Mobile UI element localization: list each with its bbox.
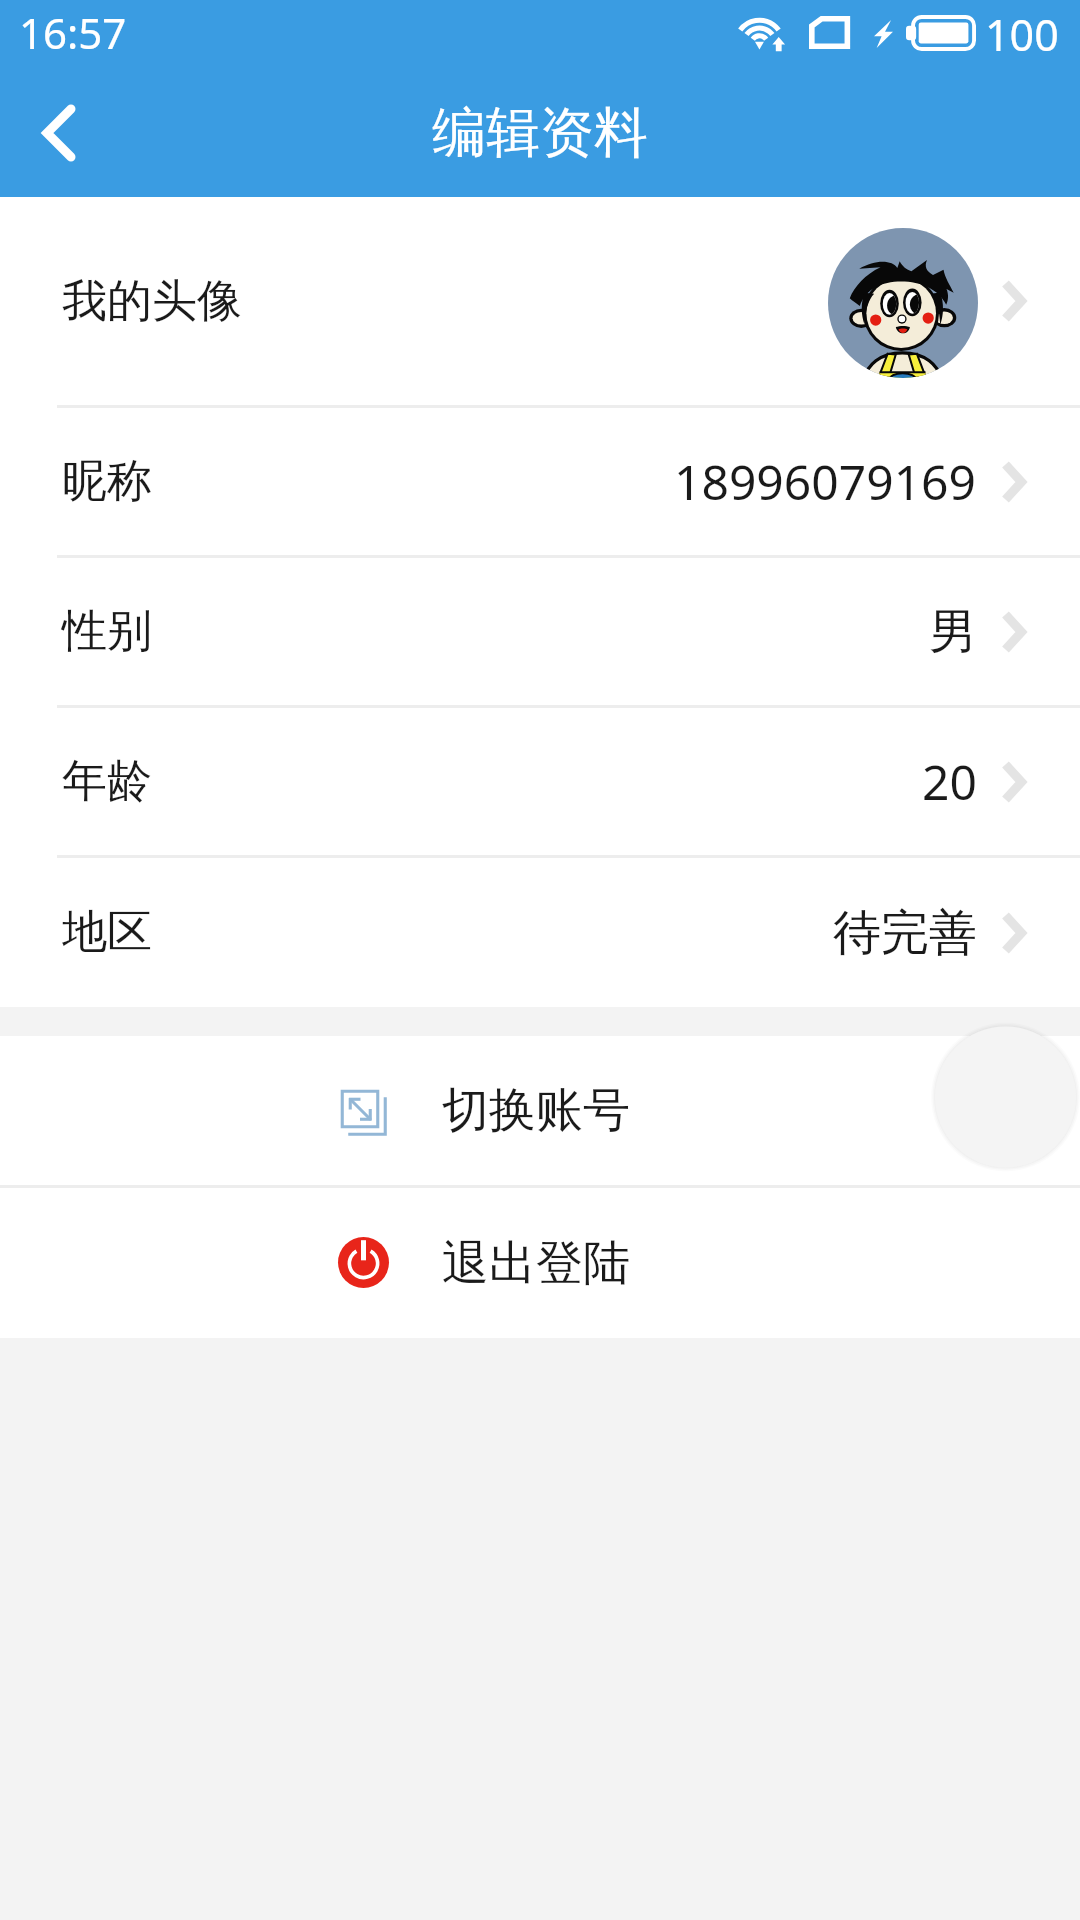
staticText: 退出登陆 (442, 1234, 630, 1293)
staticText: 男 (929, 602, 977, 662)
staticText: 100 (985, 5, 1059, 64)
button[interactable]: 地区 (0, 858, 1080, 1007)
staticText: 昵称 (62, 453, 152, 510)
button[interactable]: 我的头像 (0, 197, 1080, 405)
staticText: 性别 (62, 603, 152, 660)
staticText: 16:57 (19, 4, 127, 61)
staticText: 年龄 (62, 753, 152, 810)
staticText: 18996079169 (674, 449, 977, 514)
button[interactable]: 年龄 (0, 708, 1080, 855)
button[interactable]: 切换账号 (0, 1036, 1080, 1185)
staticText: 地区 (62, 904, 152, 961)
button[interactable]: Floating assistant (931, 1019, 1080, 1175)
staticText: 我的头像 (62, 273, 242, 330)
staticText: 编辑资料 (432, 99, 648, 167)
staticText: 切换账号 (442, 1081, 630, 1140)
button[interactable]: 退出登陆 (0, 1188, 1080, 1338)
staticText: 20 (922, 749, 977, 814)
staticText: 待完善 (833, 903, 977, 963)
button[interactable]: 昵称 (0, 408, 1080, 555)
button[interactable]: Back (0, 68, 118, 197)
button[interactable]: 性别 (0, 558, 1080, 705)
